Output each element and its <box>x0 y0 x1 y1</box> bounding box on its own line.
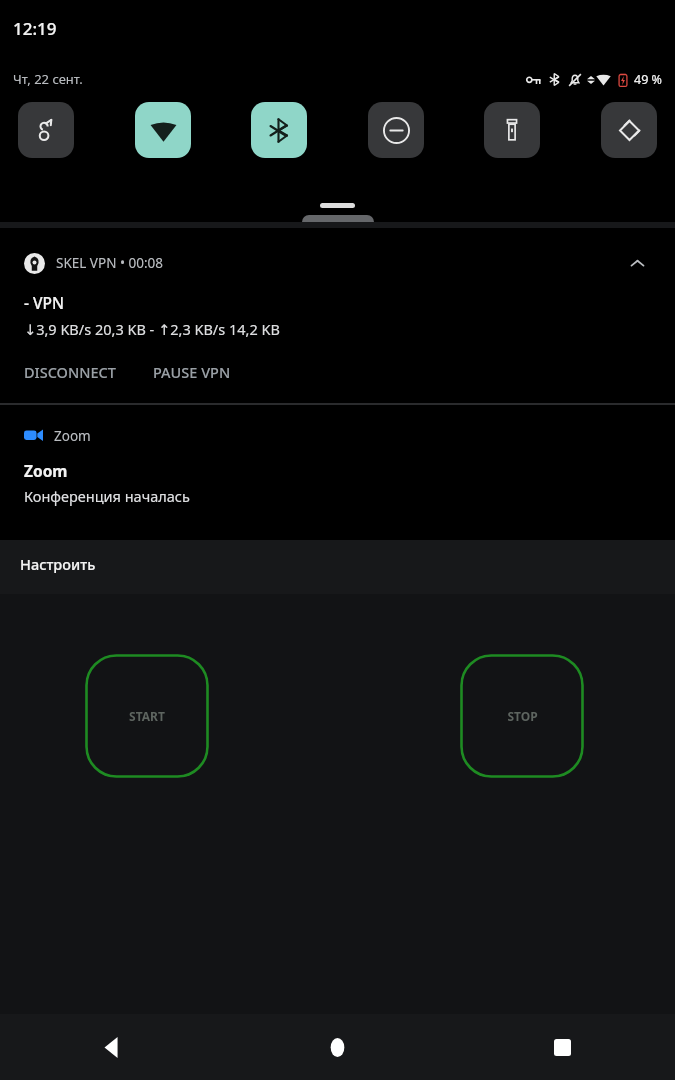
staticText: ↓3,9 KB/s 20,3 KB - ↑2,3 KB/s 14,2 KB <box>24 319 280 339</box>
button[interactable]: Collapse <box>623 249 651 277</box>
button[interactable]: START <box>85 654 209 778</box>
button[interactable]: Auto-rotate <box>601 102 657 158</box>
staticText: PAUSE VPN <box>153 362 231 382</box>
staticText: Zoom <box>24 460 68 481</box>
button[interactable]: Bluetooth <box>251 102 307 158</box>
button[interactable]: Zoom <box>0 405 675 540</box>
button[interactable]: Home <box>225 1014 450 1080</box>
staticText: Конференция началась <box>24 486 190 506</box>
staticText: 49 % <box>634 71 662 88</box>
button[interactable]: Wi-Fi <box>135 102 191 158</box>
button[interactable]: DISCONNECT <box>24 358 116 386</box>
staticText: - VPN <box>24 292 65 313</box>
staticText: Настроить <box>20 554 96 574</box>
staticText: 12:19 <box>13 17 57 40</box>
staticText: STOP <box>507 708 538 724</box>
button[interactable]: Drag handle <box>320 203 355 208</box>
button[interactable]: Настроить <box>14 550 102 578</box>
staticText: Zoom <box>54 427 91 445</box>
button[interactable]: Back <box>0 1014 225 1080</box>
button[interactable]: Do not disturb <box>368 102 424 158</box>
staticText: DISCONNECT <box>24 362 116 382</box>
button[interactable]: SKEL VPN • 00:08 <box>0 228 675 403</box>
button[interactable]: STOP <box>460 654 584 778</box>
staticText: Чт, 22 сент. <box>13 70 83 88</box>
staticText: SKEL VPN • 00:08 <box>56 254 163 272</box>
button[interactable]: Flashlight <box>484 102 540 158</box>
staticText: START <box>129 708 165 724</box>
button[interactable]: PAUSE VPN <box>153 358 231 386</box>
button[interactable]: Internet off <box>18 102 74 158</box>
button[interactable]: Recents <box>450 1014 675 1080</box>
